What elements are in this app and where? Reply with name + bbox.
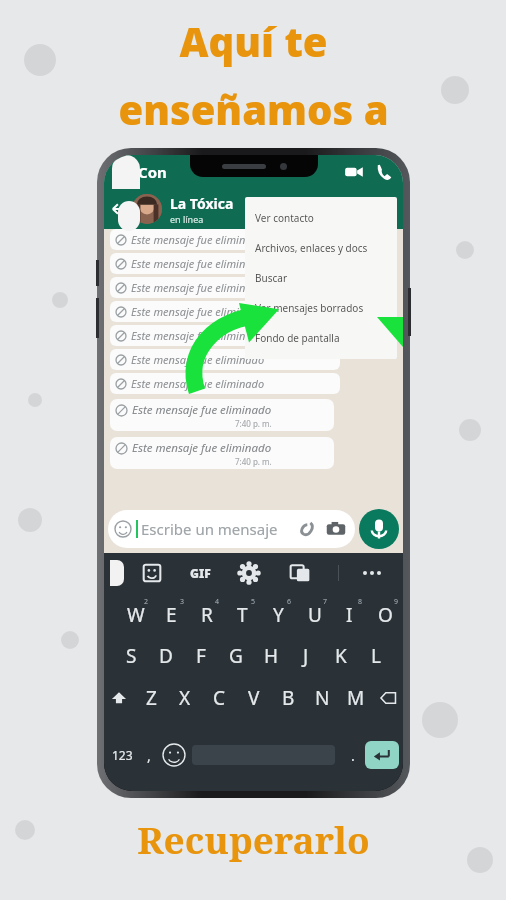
staticText: La Tóxica bbox=[170, 194, 234, 213]
staticText: B bbox=[282, 685, 295, 711]
staticText: 123 bbox=[112, 747, 133, 763]
button[interactable]: Z bbox=[138, 681, 164, 715]
button[interactable]: V bbox=[241, 681, 267, 715]
button[interactable] bbox=[132, 194, 162, 224]
staticText: Aquí te bbox=[179, 14, 328, 68]
staticText: Este mensaje fue eliminado bbox=[131, 232, 265, 247]
staticText: T bbox=[237, 602, 248, 628]
button[interactable]: H bbox=[258, 639, 284, 673]
button[interactable]: . bbox=[341, 723, 365, 787]
button[interactable]: C bbox=[206, 681, 232, 715]
button[interactable]: Buscar bbox=[245, 263, 397, 293]
button[interactable]: B bbox=[275, 681, 301, 715]
button[interactable]: G bbox=[223, 639, 249, 673]
staticText: Archivos, enlaces y docs bbox=[255, 241, 368, 255]
button[interactable]: R bbox=[193, 598, 220, 632]
button[interactable]: L bbox=[363, 639, 389, 673]
button[interactable]: Este mensaje fue eliminado bbox=[110, 325, 340, 346]
staticText: Este mensaje fue eliminado bbox=[131, 304, 265, 319]
staticText: R bbox=[201, 602, 213, 628]
button[interactable]: Voice message bbox=[359, 509, 399, 549]
staticText: Ver contacto bbox=[255, 211, 314, 225]
staticText: 2 bbox=[144, 597, 149, 607]
staticText: 6 bbox=[287, 597, 292, 607]
staticText: Este mensaje fue eliminado bbox=[131, 352, 265, 367]
button[interactable]: 123 bbox=[108, 723, 136, 787]
staticText: O bbox=[378, 602, 393, 628]
staticText: 9 bbox=[394, 597, 399, 607]
staticText: 4 bbox=[215, 597, 220, 607]
staticText: Este mensaje fue eliminado bbox=[131, 328, 265, 343]
button[interactable]: F bbox=[188, 639, 214, 673]
button[interactable]: Este mensaje fue eliminado bbox=[110, 373, 340, 394]
staticText: Y bbox=[273, 602, 284, 628]
button[interactable]: Emoji bbox=[162, 743, 186, 767]
button[interactable]: Voice call bbox=[371, 159, 397, 185]
staticText: Escribe un mensaje bbox=[141, 519, 278, 539]
button[interactable]: Y bbox=[265, 598, 292, 632]
staticText: 7 bbox=[323, 597, 328, 607]
button[interactable]: Este mensaje fue eliminado bbox=[110, 349, 340, 370]
button[interactable]: E bbox=[158, 598, 185, 632]
staticText: Fondo de pantalla bbox=[255, 331, 340, 345]
staticText: Este mensaje fue eliminado bbox=[131, 280, 265, 295]
button[interactable]: Backspace bbox=[377, 687, 399, 709]
button[interactable]: W bbox=[122, 598, 149, 632]
staticText: F bbox=[196, 643, 206, 669]
staticText: J bbox=[303, 643, 309, 669]
button[interactable]: Translate bbox=[287, 560, 313, 586]
staticText: en línea bbox=[170, 213, 204, 225]
staticText: Ver mensajes borrados bbox=[255, 301, 364, 315]
button[interactable]: J bbox=[293, 639, 319, 673]
staticText: Z bbox=[146, 685, 157, 711]
button[interactable]: T bbox=[229, 598, 256, 632]
button[interactable]: N bbox=[309, 681, 335, 715]
staticText: Este mensaje fue eliminado bbox=[131, 376, 265, 391]
staticText: U bbox=[308, 602, 322, 628]
staticText: Este mensaje fue eliminado bbox=[131, 256, 265, 271]
button[interactable]: More bbox=[359, 560, 385, 586]
staticText: C bbox=[213, 685, 226, 711]
button[interactable]: Este mensaje fue eliminado bbox=[110, 301, 340, 322]
button[interactable]: Archivos, enlaces y docs bbox=[245, 233, 397, 263]
button[interactable]: Attach bbox=[295, 518, 317, 540]
staticText: S bbox=[126, 643, 137, 669]
button[interactable]: U bbox=[301, 598, 328, 632]
button[interactable]: Este mensaje fue eliminado bbox=[110, 253, 340, 274]
staticText: M bbox=[347, 685, 365, 711]
staticText: H bbox=[264, 643, 279, 669]
button[interactable]: O bbox=[372, 598, 399, 632]
staticText: L bbox=[371, 643, 381, 669]
staticText: Buscar bbox=[255, 271, 288, 285]
button[interactable]: sticker bbox=[139, 560, 165, 586]
button[interactable]: Ver contacto bbox=[245, 203, 397, 233]
button[interactable]: D bbox=[153, 639, 179, 673]
button[interactable]: Enter bbox=[365, 741, 399, 769]
button[interactable]: GIF bbox=[190, 565, 211, 581]
button[interactable]: Camera bbox=[325, 518, 347, 540]
staticText: 8 bbox=[358, 597, 363, 607]
button[interactable]: M bbox=[343, 681, 369, 715]
staticText: W bbox=[127, 602, 145, 628]
button[interactable]: Settings bbox=[236, 560, 262, 586]
button[interactable]: Este mensaje fue eliminado bbox=[110, 399, 334, 431]
button[interactable]: Escribe un mensaje bbox=[108, 510, 355, 548]
button[interactable]: Shift bbox=[108, 687, 130, 709]
button[interactable]: Este mensaje fue eliminado bbox=[110, 229, 340, 250]
button[interactable]: S bbox=[118, 639, 144, 673]
staticText: 7:40 p. m. bbox=[235, 456, 272, 467]
button[interactable]: Fondo de pantalla bbox=[245, 323, 397, 353]
button[interactable]: I bbox=[336, 598, 363, 632]
button[interactable]: Back bbox=[108, 198, 130, 220]
button[interactable]: Ver mensajes borrados bbox=[245, 293, 397, 323]
staticText: I bbox=[346, 602, 353, 628]
staticText: , bbox=[147, 746, 151, 765]
button[interactable]: X bbox=[172, 681, 198, 715]
button[interactable]: , bbox=[136, 723, 162, 787]
button[interactable]: Video call bbox=[341, 159, 367, 185]
button[interactable]: K bbox=[328, 639, 354, 673]
button[interactable]: Este mensaje fue eliminado bbox=[110, 277, 340, 298]
staticText: Con bbox=[138, 162, 167, 182]
button[interactable]: Este mensaje fue eliminado bbox=[110, 437, 334, 469]
